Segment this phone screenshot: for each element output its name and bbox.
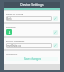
- button[interactable]: Profile icon: [6, 29, 12, 35]
- button[interactable]: EMAIL ADDRESS: [4, 38, 60, 49]
- staticText: Device Settings: [20, 3, 44, 7]
- button[interactable]: DISPLAY NAME: [4, 11, 60, 22]
- staticText: ACCOUNT: [6, 52, 18, 55]
- button[interactable]: PROFILE: [4, 24, 60, 36]
- staticText: DISPLAY NAME: [6, 12, 24, 15]
- staticText: Erik: [7, 17, 12, 21]
- button[interactable]: ACCOUNT: [4, 51, 60, 64]
- staticText: EMAIL ADDRESS: [6, 39, 25, 42]
- staticText: me@site.co: [7, 44, 22, 48]
- button[interactable]: Save changes: [6, 57, 58, 61]
- button[interactable]: Edit: [53, 16, 58, 21]
- button[interactable]: Edit: [53, 30, 58, 35]
- staticText: Save changes: [24, 57, 41, 61]
- staticText: PROFILE: [6, 25, 16, 28]
- button[interactable]: Edit: [53, 43, 58, 48]
- button[interactable]: Device Settings: [4, 2, 60, 8]
